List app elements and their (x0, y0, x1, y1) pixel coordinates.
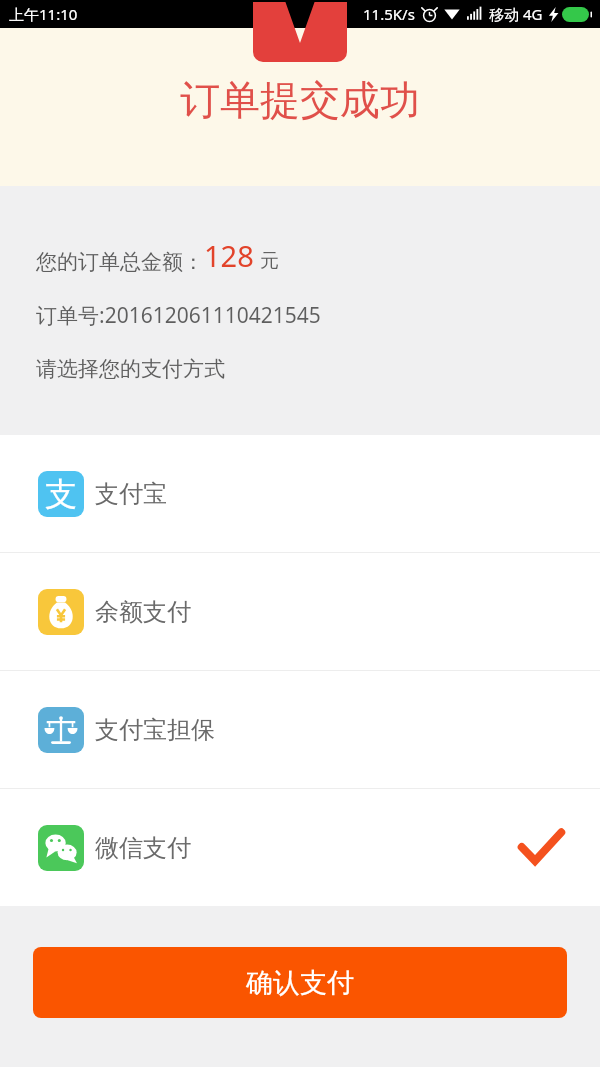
staticText: 微信支付 (95, 833, 191, 863)
staticText: 支付宝担保 (95, 715, 215, 745)
button[interactable]: 微信支付 (0, 789, 600, 906)
staticText: 支 (45, 474, 77, 514)
staticText: 订单号:201612061110421545 (36, 301, 321, 330)
staticText: 11.5K/s (363, 4, 415, 24)
button[interactable]: 支付宝担保 (0, 671, 600, 788)
other: Selected (518, 825, 564, 871)
staticText: 上午11:10 (9, 4, 78, 24)
staticText: 确认支付 (246, 966, 354, 1000)
staticText: 您的订单总金额： (36, 249, 204, 275)
staticText: 请选择您的支付方式 (36, 356, 225, 382)
staticText: 支付宝 (95, 479, 167, 509)
staticText: 订单提交成功 (180, 75, 420, 125)
staticText: 128 (204, 236, 254, 275)
button[interactable]: 确认支付 (33, 947, 567, 1018)
button[interactable]: 余额支付 (0, 553, 600, 670)
staticText: 余额支付 (95, 597, 191, 627)
button[interactable]: 支 (0, 435, 600, 552)
staticText: 移动 4G (489, 4, 543, 24)
staticText: 元 (260, 249, 279, 273)
